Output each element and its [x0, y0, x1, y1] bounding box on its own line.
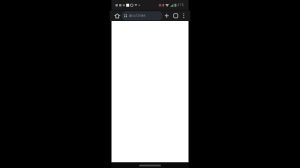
button[interactable]: Home [113, 10, 122, 21]
button[interactable]: about:blank [122, 11, 162, 20]
button[interactable]: Tabs [171, 10, 180, 21]
button[interactable]: More options [180, 10, 187, 21]
staticText: 41% [177, 3, 183, 7]
staticText: about:blank [129, 14, 145, 17]
button[interactable]: New tab [162, 10, 171, 21]
